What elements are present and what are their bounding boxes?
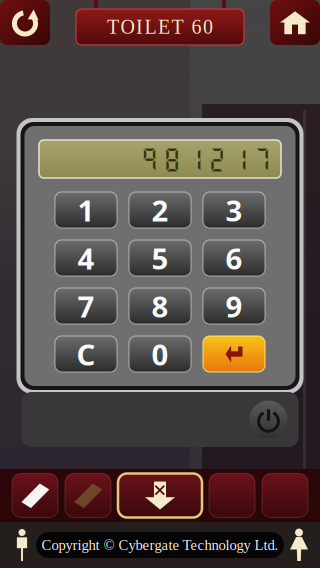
button[interactable]: 0 [129,336,191,372]
button[interactable]: Inventory slot [209,473,255,517]
staticText: 2 [208,144,226,174]
button[interactable]: C [55,336,117,372]
button[interactable]: Power [249,400,287,438]
button[interactable]: 6 [203,240,265,276]
staticText: C [76,334,95,373]
button[interactable]: 7 [55,288,117,324]
staticText: 3 [225,190,242,229]
staticText: Copyright © Cybergate Technology Ltd. [41,537,278,553]
staticText: 1 [230,144,248,174]
button[interactable]: Home [270,0,320,45]
staticText: 5 [151,238,168,277]
button[interactable]: 2 [129,192,191,228]
button[interactable]: 5 [129,240,191,276]
button[interactable]: 1 [55,192,117,228]
button[interactable]: 4 [55,240,117,276]
staticText: 9 [140,144,158,174]
staticText: TOILET 60 [107,16,213,38]
staticText: 2 [151,190,168,229]
button[interactable]: Inventory slot [262,473,308,517]
button[interactable]: 8 [129,288,191,324]
staticText: 7 [253,144,271,174]
staticText: 7 [77,286,94,325]
button[interactable]: Inventory slot [12,473,58,517]
button[interactable]: 3 [203,192,265,228]
button[interactable]: Enter [203,336,265,372]
button[interactable]: Put away item [118,473,202,517]
button[interactable]: 9 [203,288,265,324]
staticText: 8 [151,286,168,325]
staticText: 8 [163,144,181,174]
staticText: ✕ [152,481,167,500]
staticText: 9 [225,286,242,325]
staticText: 4 [77,238,94,277]
button[interactable]: Restart [0,0,50,45]
staticText: 6 [225,238,242,277]
button[interactable]: Inventory slot [65,473,111,517]
staticText: 0 [151,334,168,373]
staticText: 1 [77,190,94,229]
staticText: 1 [185,144,203,174]
